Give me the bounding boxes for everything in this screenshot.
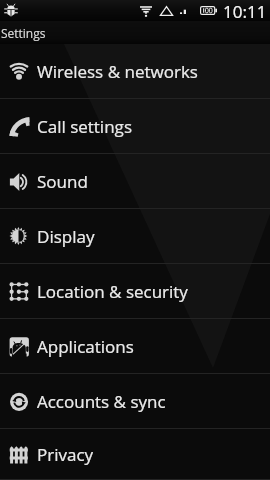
button[interactable]: Call settings — [0, 99, 270, 154]
button[interactable]: Sound — [0, 154, 270, 209]
button[interactable]: Privacy — [0, 429, 270, 480]
button[interactable]: Location & security — [0, 264, 270, 319]
button[interactable]: Applications — [0, 319, 270, 374]
button[interactable]: Display — [0, 209, 270, 264]
staticText: Settings — [1, 25, 46, 41]
staticText: Sound — [37, 170, 88, 193]
staticText: Accounts & sync — [37, 390, 166, 413]
staticText: 10:11 — [223, 0, 267, 21]
staticText: Location & security — [37, 280, 188, 303]
button[interactable]: Accounts & sync — [0, 374, 270, 429]
staticText: Privacy — [37, 443, 94, 466]
staticText: Call settings — [37, 115, 133, 138]
staticText: Display — [37, 225, 95, 248]
button[interactable]: Wireless & networks — [0, 44, 270, 99]
staticText: Wireless & networks — [37, 60, 198, 83]
staticText: Applications — [37, 335, 134, 358]
